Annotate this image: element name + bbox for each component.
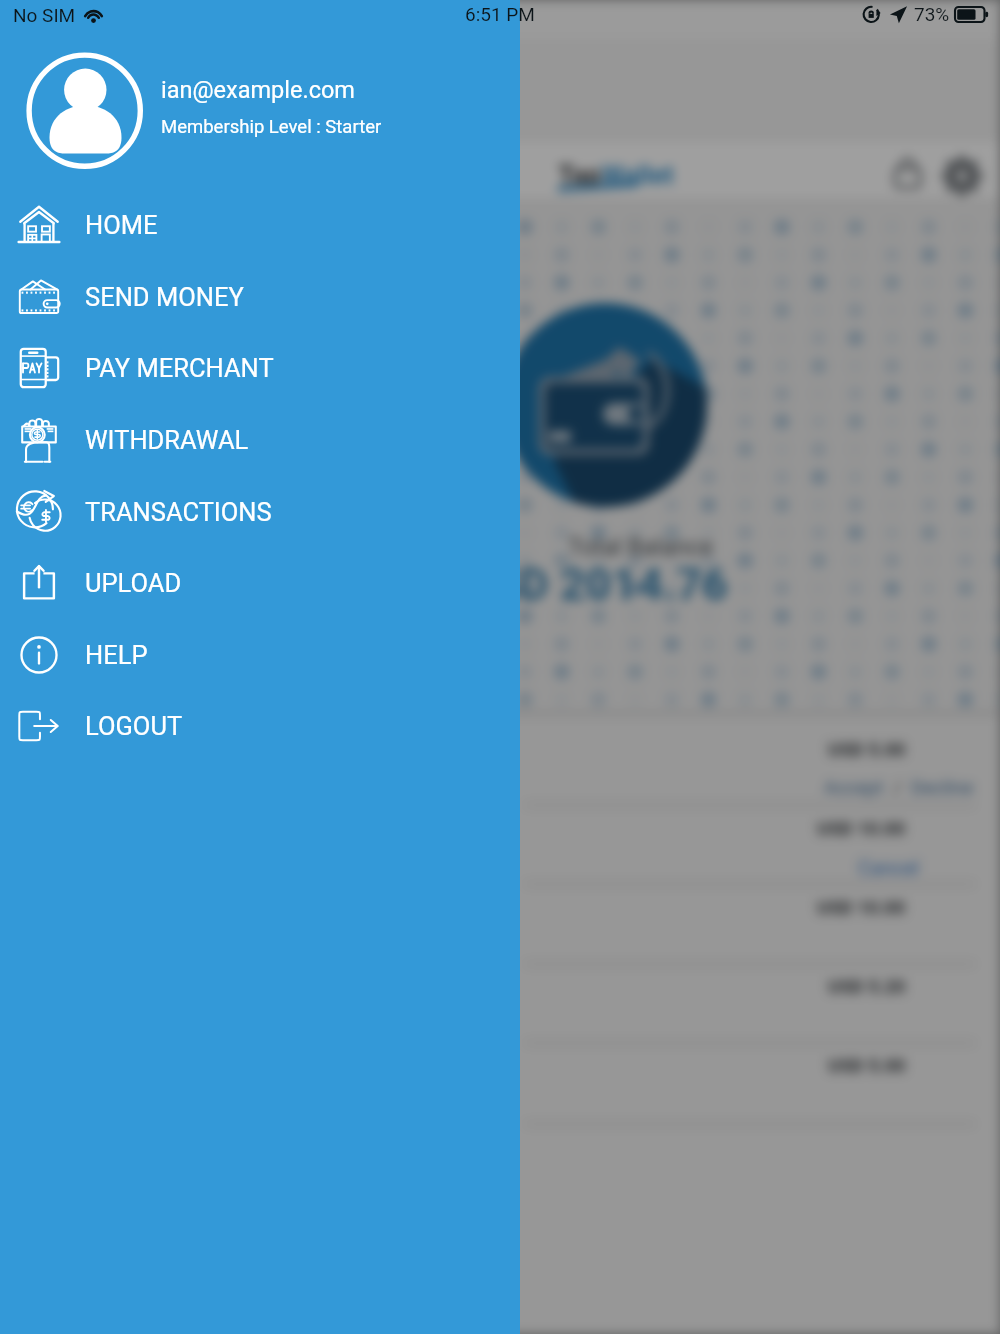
staticText: USD 10.00 <box>817 818 906 840</box>
staticText: UPLOAD <box>85 568 182 598</box>
staticText: PAY MERCHANT <box>85 353 274 383</box>
button[interactable]: WITHDRAWAL <box>0 404 520 476</box>
button[interactable]: LOGOUT <box>0 690 520 762</box>
staticText: LOGOUT <box>85 711 183 741</box>
staticText: 73% <box>914 3 950 25</box>
staticText: HOME <box>85 210 158 240</box>
staticText: USD 2014.76 <box>462 558 728 611</box>
button[interactable]: SEND MONEY <box>0 261 520 333</box>
button[interactable]: HELP <box>0 619 520 691</box>
button[interactable]: HOME <box>0 189 520 261</box>
staticText: Cancel <box>858 856 919 879</box>
staticText: Wallet <box>601 160 674 190</box>
button[interactable]: PAY MERCHANT <box>0 332 520 404</box>
staticText: WITHDRAWAL <box>85 425 249 455</box>
button[interactable]: Close navigation drawer <box>0 0 1000 1334</box>
staticText: No SIM <box>13 4 76 26</box>
staticText: Decline <box>911 776 974 798</box>
staticText: USD 5.00 <box>828 1055 906 1077</box>
staticText: USD 10.00 <box>817 897 906 919</box>
staticText: HELP <box>85 640 148 670</box>
staticText: USD 5.20 <box>828 976 906 998</box>
staticText: Membership Level : Starter <box>161 116 382 138</box>
button[interactable] <box>0 0 520 186</box>
staticText: USD 5.00 <box>828 739 906 761</box>
staticText: TRANSACTIONS <box>85 497 272 527</box>
staticText: Total Balance <box>568 533 713 561</box>
staticText: 6:51 PM <box>465 3 535 25</box>
other: Profile photo <box>24 50 144 170</box>
staticText: SEND MONEY <box>85 282 244 312</box>
staticText: Tap <box>558 160 601 190</box>
staticText: ian@example.com <box>161 76 355 104</box>
button[interactable]: UPLOAD <box>0 547 520 619</box>
staticText: Accept <box>824 776 884 798</box>
button[interactable]: TRANSACTIONS <box>0 476 520 548</box>
